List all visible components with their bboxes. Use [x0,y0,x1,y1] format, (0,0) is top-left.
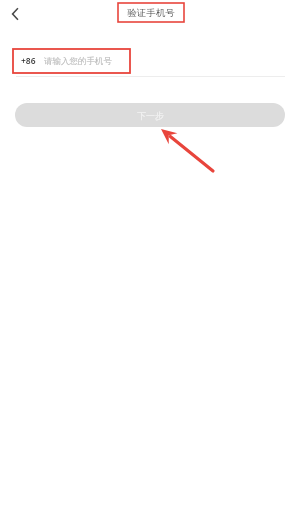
staticText: 下一步 [137,110,164,121]
button[interactable]: 下一步 [15,103,285,127]
button[interactable]: Back [2,1,28,27]
staticText: 验证手机号 [127,7,175,19]
button[interactable]: +86 [14,50,129,72]
staticText: +86 [21,55,36,67]
staticText: 请输入您的手机号 [44,56,112,67]
